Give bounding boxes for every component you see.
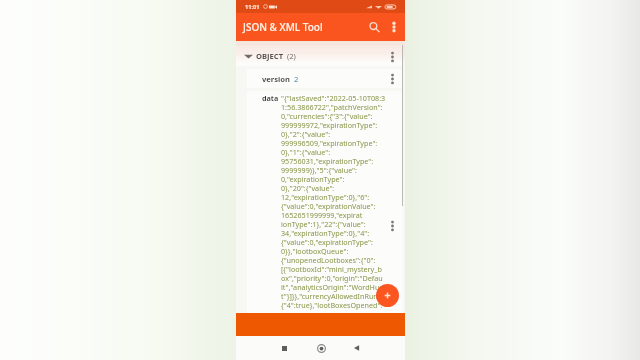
button[interactable]: Add xyxy=(376,284,399,307)
button[interactable]: Search xyxy=(365,18,383,36)
button[interactable]: Back xyxy=(349,340,365,356)
button[interactable]: More options xyxy=(386,19,402,35)
button[interactable]: OBJECT xyxy=(236,46,403,66)
staticText: data xyxy=(262,93,279,103)
button[interactable]: data xyxy=(247,91,403,313)
staticText: 2 xyxy=(294,74,299,84)
button[interactable]: More xyxy=(387,51,398,62)
button[interactable]: version xyxy=(247,69,403,88)
staticText: OBJECT xyxy=(256,51,284,61)
staticText: version xyxy=(262,74,291,84)
staticText: JSON & XML Tool xyxy=(243,20,323,34)
button[interactable]: More xyxy=(387,220,398,231)
button[interactable]: Recents xyxy=(276,340,292,356)
staticText: "{"lastSaved":"2022-05-10T08:3 1:56.3866… xyxy=(281,93,386,310)
button[interactable]: Home xyxy=(313,340,329,356)
staticText: (2) xyxy=(287,51,296,61)
staticText: 11:01 xyxy=(245,3,260,11)
button[interactable]: More xyxy=(387,73,398,84)
